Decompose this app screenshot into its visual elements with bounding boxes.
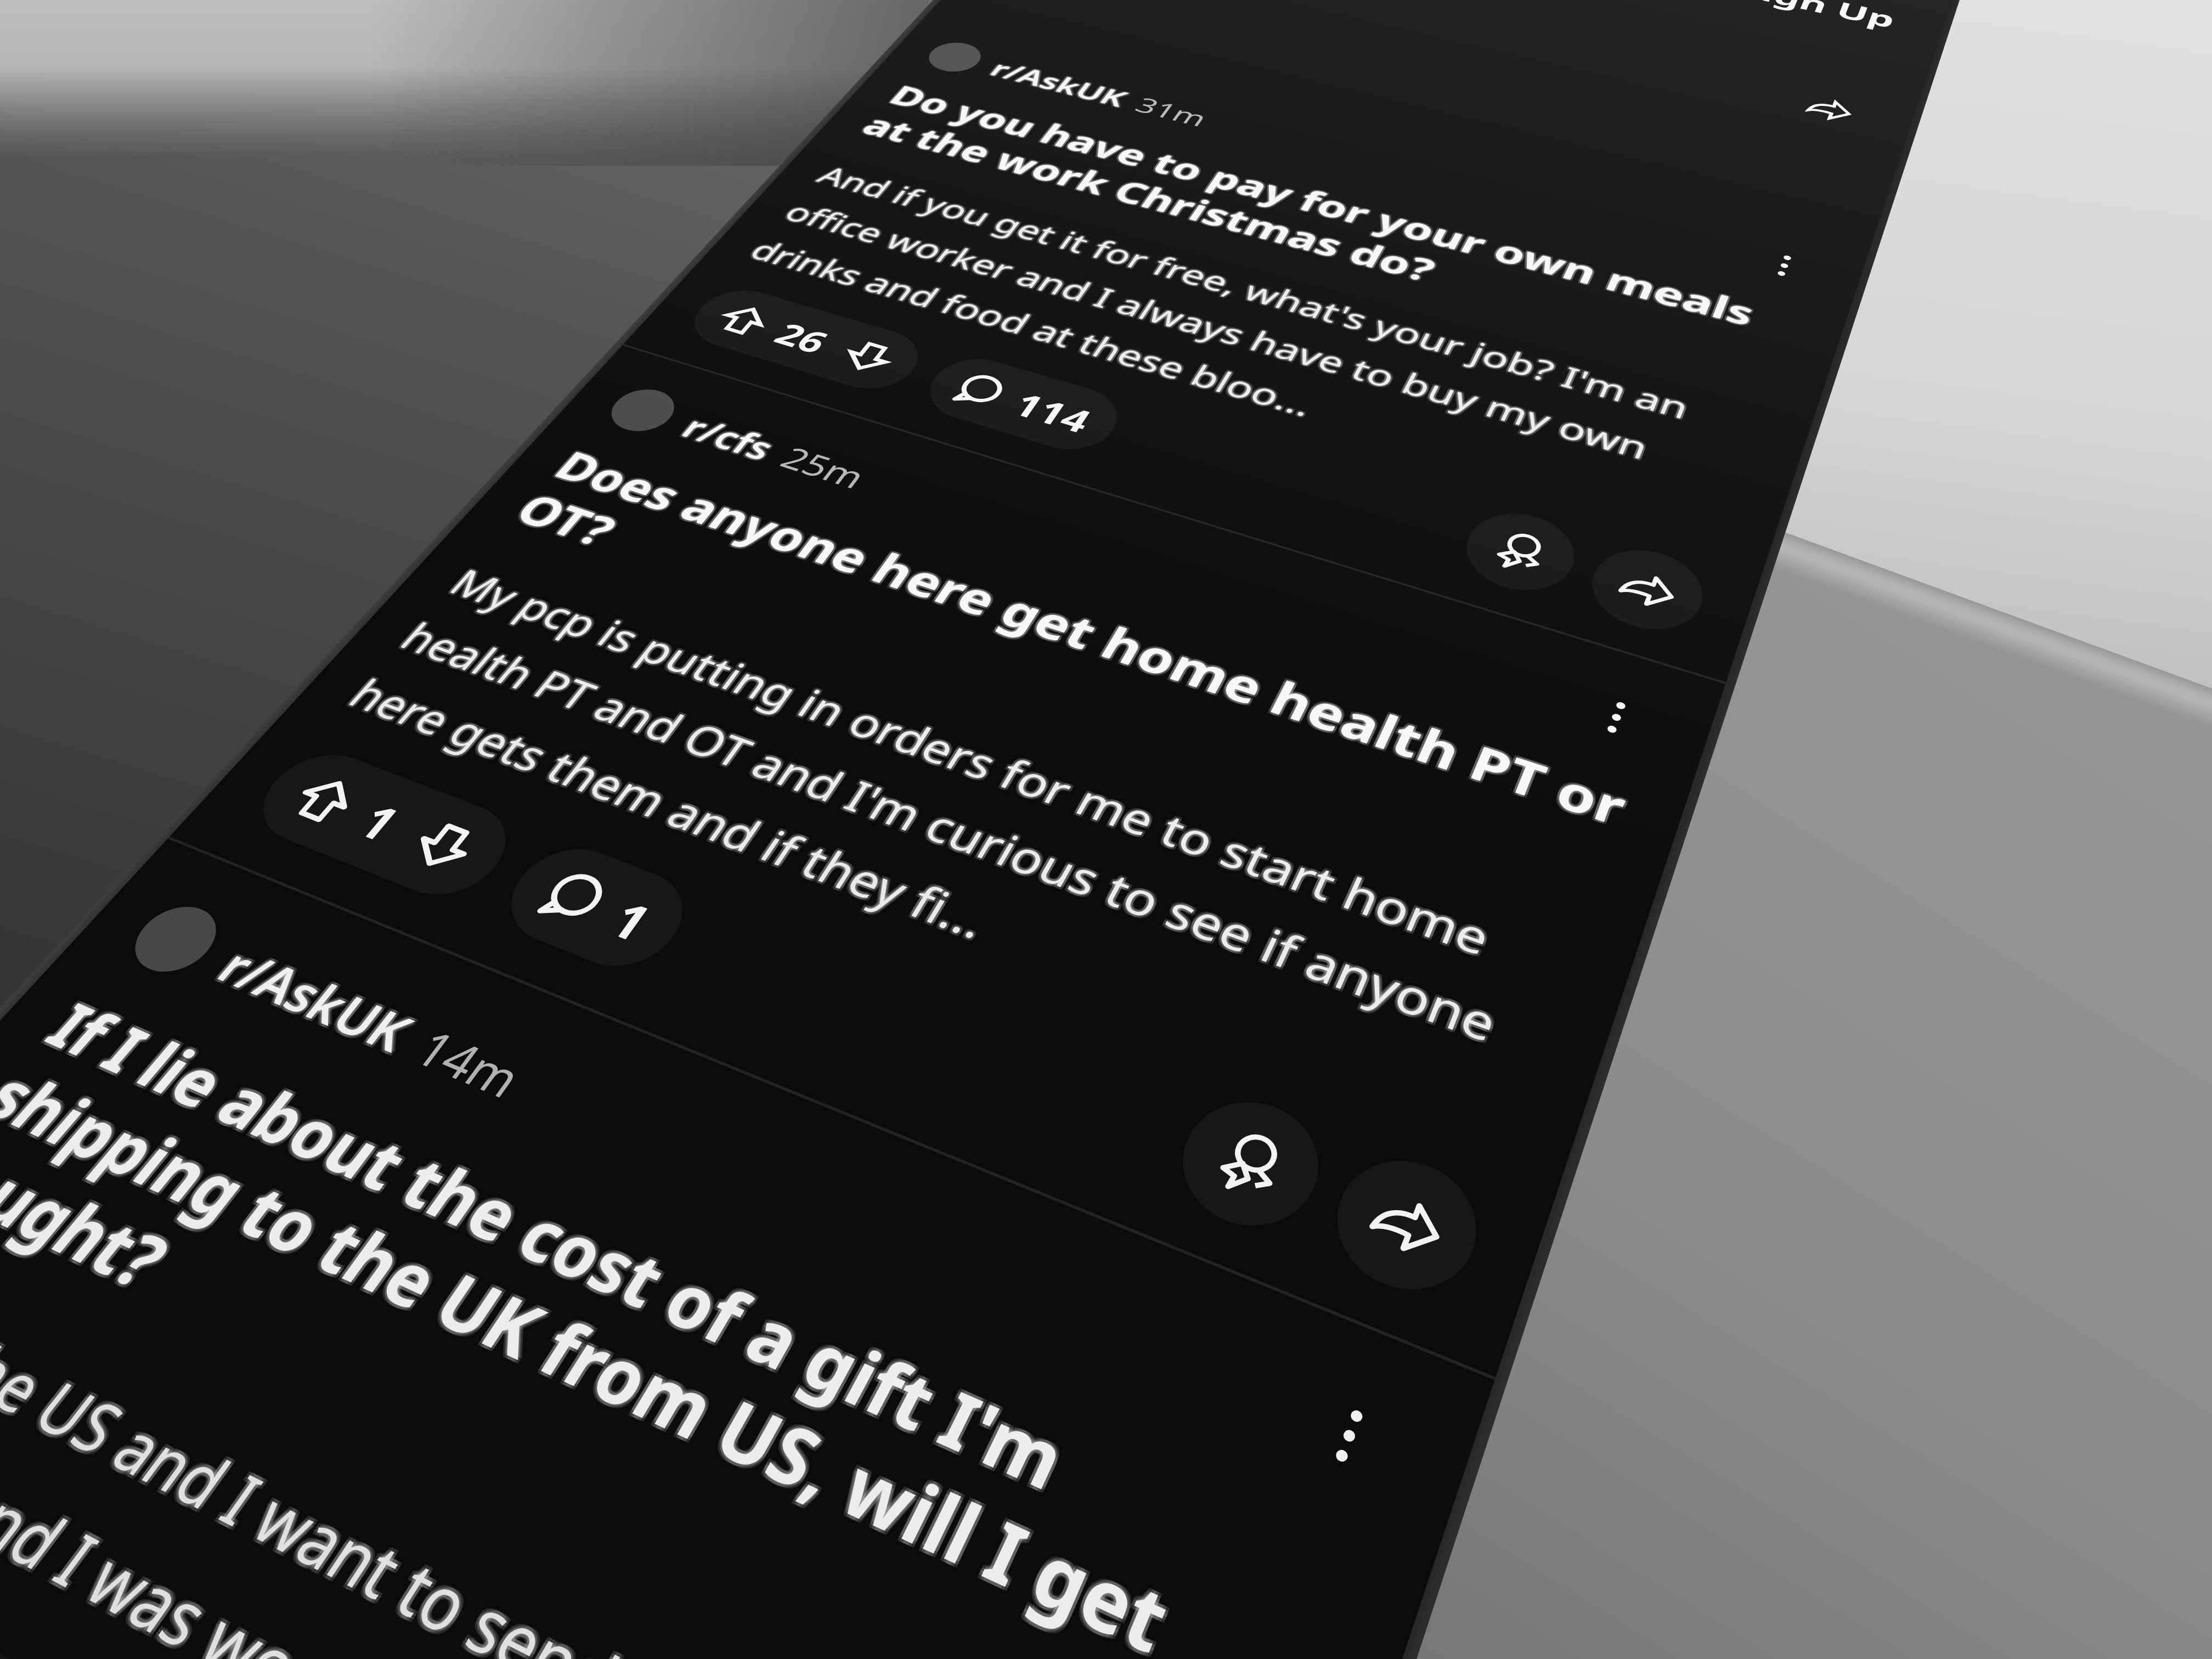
- button[interactable]: More options: [1566, 677, 1667, 759]
- staticText: Do you have to pay for your own meals at…: [852, 78, 1806, 387]
- staticText: My pcp is putting in orders for me to st…: [336, 555, 1581, 1152]
- staticText: r/AskUK: [984, 56, 1136, 115]
- staticText: r/AskUK: [199, 935, 424, 1068]
- button[interactable]: Award: [1453, 502, 1587, 603]
- staticText: If I lie about the cost of a gift I'm sh…: [0, 983, 1374, 1659]
- staticText: 31m: [1129, 91, 1214, 133]
- staticText: I'm in the US and I want to send in a gi…: [0, 1247, 1235, 1659]
- staticText: I'm in the US and I want to send in a gi…: [0, 1250, 1226, 1659]
- staticText: My pcp is putting in orders for me to st…: [337, 559, 1584, 1159]
- staticText: r/AskUK: [205, 934, 430, 1068]
- button[interactable]: More options: [1744, 239, 1825, 294]
- staticText: If I lie about the cost of a gift I'm sh…: [0, 981, 1368, 1659]
- staticText: If I lie about the cost of a gift I'm sh…: [0, 985, 1373, 1659]
- button[interactable]: r/AskUK: [623, 12, 1872, 682]
- staticText: r/AskUK: [984, 55, 1137, 114]
- staticText: And if you get it for free, what's your …: [741, 157, 1768, 545]
- staticText: Do you have to pay for your own meals at…: [854, 76, 1807, 385]
- staticText: r/AskUK: [203, 933, 428, 1067]
- staticText: If I lie about the cost of a gift I'm sh…: [0, 985, 1366, 1659]
- button[interactable]: 26: [678, 282, 933, 398]
- button[interactable]: Share: [1777, 77, 1881, 142]
- staticText: If I lie about the cost of a gift I'm sh…: [0, 982, 1371, 1659]
- staticText: r/cfs: [674, 407, 788, 470]
- staticText: 14m: [402, 1016, 536, 1112]
- staticText: My pcp is putting in orders for me to st…: [334, 556, 1580, 1155]
- staticText: r/AskUK: [984, 54, 1136, 112]
- staticText: r/cfs: [675, 406, 789, 469]
- staticText: My pcp is putting in orders for me to st…: [335, 558, 1582, 1158]
- staticText: I'm in the US and I want to send in a gi…: [0, 1251, 1230, 1659]
- staticText: r/AskUK: [207, 932, 432, 1066]
- staticText: I'm in the US and I want to send in a gi…: [0, 1249, 1234, 1659]
- staticText: And if you get it for free, what's your …: [740, 159, 1769, 548]
- button[interactable]: 1: [488, 835, 704, 982]
- staticText: And if you get it for free, what's your …: [741, 158, 1770, 547]
- staticText: If I lie about the cost of a gift I'm sh…: [0, 983, 1367, 1659]
- staticText: r/cfs: [672, 407, 786, 470]
- staticText: Do you have to pay for your own meals at…: [853, 77, 1806, 386]
- staticText: Does anyone here get home health PT or O…: [501, 440, 1638, 903]
- staticText: r/AskUK: [983, 55, 1135, 113]
- button[interactable]: Share: [1580, 538, 1714, 642]
- staticText: My pcp is putting in orders for me to st…: [333, 558, 1579, 1157]
- staticText: I'm in the US and I want to send in a gi…: [0, 1247, 1228, 1659]
- staticText: Do you have to pay for your own meals at…: [852, 76, 1805, 384]
- staticText: My pcp is putting in orders for me to st…: [338, 556, 1583, 1154]
- staticText: r/cfs: [671, 408, 785, 471]
- staticText: And if you get it for free, what's your …: [739, 159, 1767, 548]
- staticText: Does anyone here get home health PT or O…: [504, 439, 1641, 902]
- staticText: 25m: [772, 438, 875, 497]
- button[interactable]: r/cfs: [169, 345, 1726, 1377]
- staticText: And if you get it for free, what's your …: [744, 157, 1772, 546]
- staticText: 1: [344, 790, 416, 854]
- button[interactable]: More options: [1281, 1368, 1417, 1507]
- staticText: 114: [1004, 383, 1102, 442]
- staticText: 1: [597, 886, 666, 955]
- staticText: If I lie about the cost of a gift I'm sh…: [0, 984, 1370, 1659]
- button[interactable]: 114: [914, 350, 1132, 459]
- staticText: Do you have to pay for your own meals at…: [852, 76, 1804, 385]
- staticText: I'm in the US and I want to send in a gi…: [0, 1248, 1231, 1659]
- staticText: 26: [765, 313, 839, 362]
- staticText: r/AskUK: [203, 936, 429, 1070]
- button[interactable]: 1: [240, 742, 528, 909]
- staticText: r/AskUK: [982, 55, 1135, 114]
- button[interactable]: Award: [1162, 1084, 1337, 1246]
- staticText: r/cfs: [673, 405, 787, 468]
- staticText: Does anyone here get home health PT or O…: [499, 439, 1636, 902]
- button[interactable]: Share: [1318, 1141, 1494, 1311]
- staticText: Do you have to pay for your own meals at…: [855, 77, 1808, 386]
- button[interactable]: r/AskUK: [0, 839, 1495, 1659]
- button[interactable]: Sign Up: [1720, 0, 1915, 42]
- staticText: And if you get it for free, what's your …: [742, 159, 1771, 549]
- staticText: r/AskUK: [201, 935, 426, 1069]
- staticText: My pcp is putting in orders for me to st…: [339, 556, 1586, 1154]
- staticText: My pcp is putting in orders for me to st…: [336, 557, 1583, 1156]
- staticText: I'm in the US and I want to send in a gi…: [0, 1252, 1233, 1659]
- staticText: And if you get it for free, what's your …: [743, 158, 1772, 548]
- staticText: I'm in the US and I want to send in a gi…: [0, 1246, 1232, 1659]
- staticText: Does anyone here get home health PT or O…: [502, 437, 1637, 898]
- staticText: I'm in the US and I want to send in a gi…: [0, 1245, 1229, 1659]
- staticText: r/AskUK: [203, 931, 427, 1064]
- staticText: Do you have to pay for your own meals at…: [851, 77, 1804, 387]
- staticText: Do you have to pay for your own meals at…: [854, 78, 1808, 388]
- staticText: r/AskUK: [981, 55, 1133, 114]
- staticText: r/cfs: [669, 407, 783, 470]
- staticText: r/AskUK: [201, 933, 426, 1066]
- staticText: And if you get it for free, what's your …: [742, 157, 1770, 546]
- staticText: Sign Up: [1735, 0, 1900, 35]
- staticText: If I lie about the cost of a gift I'm sh…: [0, 986, 1369, 1659]
- staticText: Does anyone here get home health PT or O…: [503, 441, 1641, 904]
- staticText: r/AskUK: [981, 54, 1134, 113]
- staticText: r/cfs: [671, 405, 785, 468]
- staticText: Do you have to pay for your own meals at…: [856, 76, 1809, 385]
- staticText: r/cfs: [672, 408, 787, 472]
- staticText: My pcp is putting in orders for me to st…: [338, 558, 1585, 1157]
- staticText: If I lie about the cost of a gift I'm sh…: [0, 987, 1372, 1659]
- staticText: r/AskUK: [982, 53, 1134, 112]
- staticText: Does anyone here get home health PT or O…: [500, 438, 1637, 900]
- staticText: Does anyone here get home health PT or O…: [505, 438, 1642, 900]
